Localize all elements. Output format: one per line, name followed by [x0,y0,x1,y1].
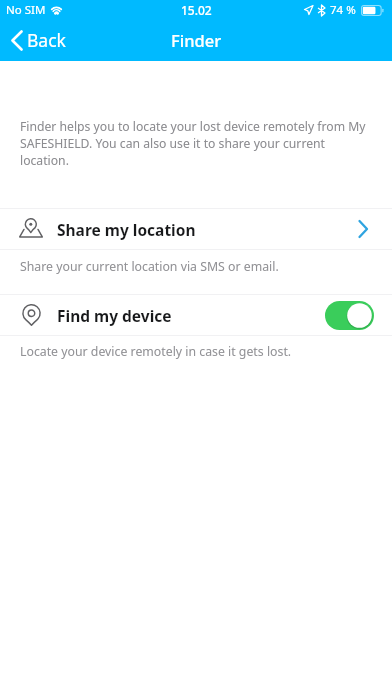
staticText: Finder [171,29,222,51]
button[interactable]: Share my location [349,215,377,243]
staticText: Find my device [57,305,172,326]
staticText: Back [27,28,66,52]
button[interactable]: Back [11,28,66,52]
button[interactable]: Share my location [0,209,392,249]
staticText: Share your current location via SMS or e… [20,258,279,275]
staticText: Locate your device remotely in case it g… [20,343,292,360]
staticText: Share my location [57,219,196,240]
staticText: Finder helps you to locate your lost dev… [20,118,372,169]
button[interactable]: Find my device, on [325,301,374,330]
button[interactable]: Find my device [0,295,392,335]
staticText: 15.02 [181,2,212,18]
staticText: 74 % [330,2,356,18]
staticText: No SIM [6,2,46,18]
